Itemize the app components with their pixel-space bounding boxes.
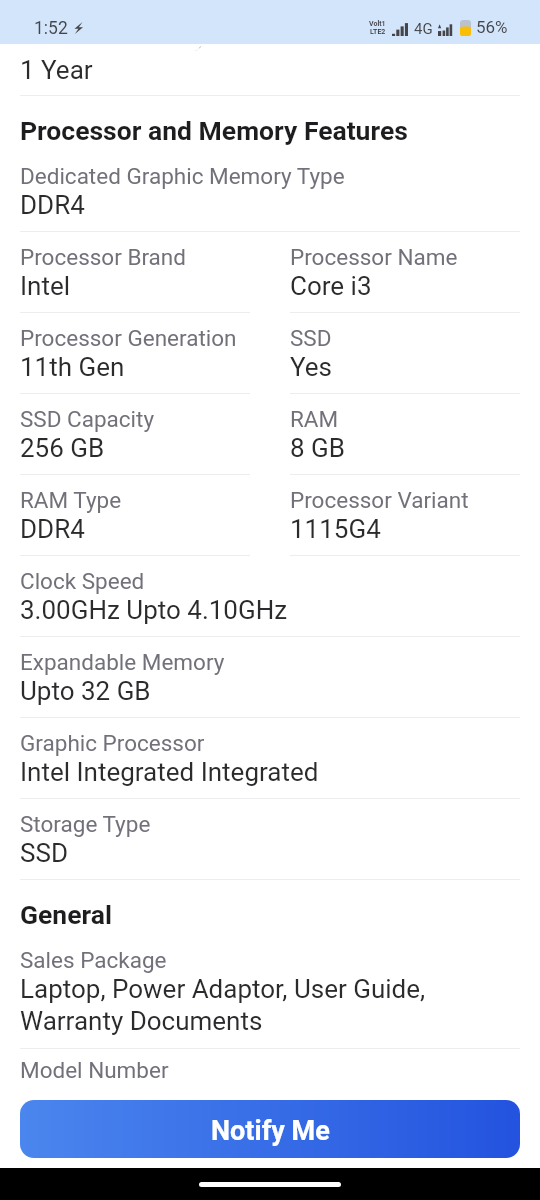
staticText: Clock Speed — [20, 568, 145, 594]
staticText: RAM — [290, 406, 339, 432]
staticText: Laptop, Power Adaptor, User Guide, Warra… — [20, 974, 426, 1037]
staticText: 1115G4 — [290, 514, 381, 544]
staticText: Model Number — [20, 1057, 169, 1083]
staticText: RAM Type — [20, 487, 122, 513]
staticText: Volt1 — [369, 20, 386, 28]
button[interactable]: RAM Type — [20, 475, 250, 556]
button[interactable]: RAM — [290, 394, 520, 475]
staticText: Intel Integrated Integrated — [20, 757, 319, 787]
staticText: Storage Type — [20, 811, 151, 837]
staticText: Core i3 — [290, 271, 372, 301]
button[interactable]: Dedicated Graphic Memory Type — [20, 151, 520, 232]
staticText: Yes — [290, 352, 332, 382]
button[interactable]: Processor Generation — [20, 313, 250, 394]
staticText: Dedicated Graphic Memory Type — [20, 163, 345, 189]
staticText: Intel — [20, 271, 71, 301]
staticText: SSD — [290, 325, 332, 351]
button[interactable]: Notify Me — [20, 1100, 520, 1158]
staticText: 8 GB — [290, 433, 345, 463]
staticText: 3.00GHz Upto 4.10GHz — [20, 595, 288, 625]
button[interactable]: Expandable Memory — [20, 637, 520, 718]
staticText: Upto 32 GB — [20, 676, 151, 706]
staticText: 1:52 — [34, 18, 68, 39]
staticText: LTE2 — [370, 28, 386, 36]
staticText: 4G — [414, 20, 433, 38]
button[interactable]: Processor Variant — [290, 475, 520, 556]
button[interactable]: Processor Name — [290, 232, 520, 313]
staticText: DDR4 — [20, 190, 85, 220]
staticText: Processor Variant — [290, 487, 469, 513]
staticText: Notify Me — [211, 1115, 330, 1147]
staticText: DDR4 — [20, 514, 85, 544]
staticText: SSD — [20, 838, 68, 868]
button[interactable]: Sales Package — [20, 935, 520, 1049]
button[interactable]: SSD Capacity — [20, 394, 250, 475]
staticText: Graphic Processor — [20, 730, 205, 756]
button[interactable]: Storage Type — [20, 799, 520, 880]
staticText: Sales Package — [20, 947, 167, 973]
button[interactable]: Graphic Processor — [20, 718, 520, 799]
staticText: Expandable Memory — [20, 649, 225, 675]
button[interactable]: Processor Brand — [20, 232, 250, 313]
staticText: Processor Brand — [20, 244, 186, 270]
staticText: General — [20, 899, 113, 930]
staticText: Processor Generation — [20, 325, 237, 351]
button[interactable]: SSD — [290, 313, 520, 394]
staticText: 56% — [476, 17, 508, 37]
button[interactable]: Clock Speed — [20, 556, 520, 637]
staticText: 256 GB — [20, 433, 105, 463]
staticText: 11th Gen — [20, 352, 125, 382]
staticText: 1 Year — [20, 55, 93, 85]
staticText: SSD Capacity — [20, 406, 155, 432]
staticText: Processor and Memory Features — [20, 115, 408, 146]
staticText: Processor Name — [290, 244, 458, 270]
